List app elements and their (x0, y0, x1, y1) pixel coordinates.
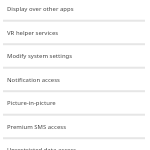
button[interactable]: Picture-in-picture (0, 92, 150, 115)
button[interactable]: Unrestricted data access (0, 139, 150, 150)
staticText: Picture-in-picture (7, 99, 56, 107)
button[interactable]: VR helper services (0, 22, 150, 45)
button[interactable]: Modify system settings (0, 45, 150, 68)
button[interactable]: Premium SMS access (0, 116, 150, 139)
button[interactable]: Display over other apps (0, 0, 150, 21)
staticText: Notification access (7, 76, 60, 84)
staticText: VR helper services (7, 29, 59, 37)
staticText: Display over other apps (7, 5, 74, 13)
staticText: Premium SMS access (7, 123, 67, 131)
staticText: Unrestricted data access (7, 146, 77, 150)
staticText: Modify system settings (7, 52, 73, 60)
button[interactable]: Notification access (0, 69, 150, 92)
